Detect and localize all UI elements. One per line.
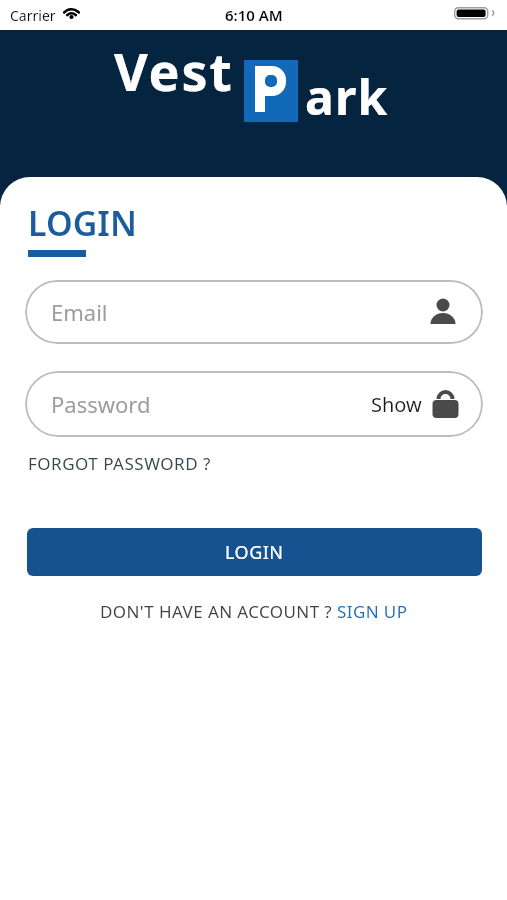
button[interactable]: Password [25, 371, 483, 437]
staticText: Carrier [10, 6, 56, 25]
staticText: LOGIN [28, 200, 137, 246]
button[interactable]: FORGOT PASSWORD ? [28, 452, 211, 475]
button[interactable]: SIGN UP [337, 600, 408, 623]
staticText: 6:10 AM [225, 5, 283, 25]
button[interactable]: Email [25, 280, 483, 344]
staticText: LOGIN [225, 540, 284, 565]
button[interactable]: LOGIN [27, 528, 482, 576]
staticText: Show [371, 391, 422, 418]
staticText: Vest [114, 35, 234, 106]
staticText: Password [51, 389, 151, 419]
staticText: DON'T HAVE AN ACCOUNT ? [100, 600, 337, 623]
staticText: ark [305, 64, 389, 129]
staticText: Email [51, 297, 108, 327]
